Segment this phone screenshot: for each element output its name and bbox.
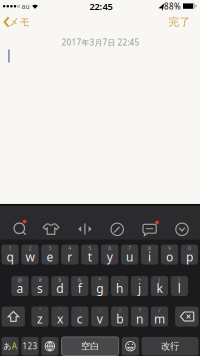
staticText: y	[107, 249, 113, 265]
button[interactable]: メモ	[0, 14, 30, 30]
button[interactable]	[4, 205, 36, 239]
staticText: m	[154, 311, 165, 327]
button[interactable]: 改行	[142, 337, 198, 355]
staticText: i	[148, 249, 151, 265]
button[interactable]: 1	[1, 244, 19, 264]
staticText: n	[136, 311, 143, 327]
button[interactable]: :	[71, 306, 88, 326]
staticText: 8	[148, 245, 151, 252]
button[interactable]: 8	[141, 244, 158, 264]
staticText: u	[126, 249, 133, 265]
staticText: 88%	[164, 1, 181, 12]
staticText: ?	[139, 307, 141, 314]
button[interactable]: 9	[161, 244, 178, 264]
staticText: 4	[68, 245, 71, 252]
button[interactable]: -	[111, 276, 128, 296]
button[interactable]	[35, 205, 67, 239]
staticText: 22:45	[89, 0, 112, 12]
button[interactable]: 完了	[166, 14, 192, 30]
staticText: *	[98, 276, 101, 283]
button[interactable]	[101, 205, 133, 239]
button[interactable]: #	[31, 276, 48, 296]
staticText: '	[59, 307, 60, 314]
staticText: x	[57, 311, 63, 327]
staticText: $	[58, 276, 61, 283]
button[interactable]: '	[51, 306, 68, 326]
staticText: r	[67, 249, 72, 265]
staticText: s	[37, 280, 43, 296]
button[interactable]: あ	[1, 337, 19, 355]
button[interactable]: !	[111, 306, 128, 326]
staticText: q	[7, 249, 14, 265]
staticText: 空白	[81, 340, 99, 352]
staticText: ;	[99, 307, 100, 314]
button[interactable]: 0	[181, 244, 198, 264]
staticText: 3	[48, 245, 51, 252]
staticText: 123	[22, 341, 37, 351]
staticText: 9	[168, 245, 171, 252]
staticText: 1	[9, 245, 12, 252]
button[interactable]: (	[151, 276, 168, 296]
button[interactable]	[166, 205, 198, 239]
staticText: z	[37, 311, 43, 327]
button[interactable]	[69, 205, 101, 239]
staticText: p	[186, 249, 193, 265]
button[interactable]: 4	[61, 244, 78, 264]
staticText: k	[156, 280, 162, 296]
staticText: 5	[88, 245, 91, 252]
staticText: 2017年3月7日 22:45	[61, 37, 139, 48]
staticText: g	[96, 280, 103, 296]
staticText: (	[158, 276, 160, 283]
button[interactable]: "	[31, 306, 49, 326]
button[interactable]	[175, 306, 198, 326]
staticText: :	[79, 307, 80, 314]
button[interactable]: 5	[81, 244, 98, 264]
button[interactable]: )	[171, 276, 188, 296]
staticText: c	[77, 311, 83, 327]
button[interactable]: &	[71, 276, 88, 296]
button[interactable]	[122, 337, 139, 355]
button[interactable]: /	[151, 306, 168, 326]
staticText: あ	[3, 341, 11, 351]
button[interactable]: +	[131, 276, 148, 296]
staticText: 0	[188, 245, 191, 252]
button[interactable]: 空白	[61, 337, 119, 355]
button[interactable]	[134, 205, 166, 239]
button[interactable]: 3	[41, 244, 58, 264]
staticText: l	[178, 280, 181, 296]
staticText: #	[38, 276, 41, 283]
staticText: 7	[128, 245, 131, 252]
staticText: t	[88, 249, 92, 265]
staticText: o	[166, 249, 173, 265]
staticText: f	[78, 280, 82, 296]
staticText: "	[39, 307, 41, 314]
staticText: 完了	[168, 15, 190, 28]
staticText: v	[97, 311, 103, 327]
staticText: 改行	[161, 340, 179, 352]
staticText: メモ	[8, 15, 30, 28]
button[interactable]: @	[11, 276, 29, 296]
button[interactable]: *	[91, 276, 108, 296]
button[interactable]: 7	[121, 244, 138, 264]
button[interactable]: 123	[21, 337, 39, 355]
staticText: d	[56, 280, 63, 296]
button[interactable]: ;	[91, 306, 108, 326]
staticText: !	[119, 307, 120, 314]
staticText: @	[17, 276, 22, 283]
button[interactable]: ?	[131, 306, 148, 326]
button[interactable]	[41, 337, 58, 355]
staticText: w	[25, 249, 34, 265]
staticText: a	[16, 280, 23, 296]
staticText: -	[119, 276, 121, 283]
staticText: 2	[28, 245, 31, 252]
button[interactable]	[1, 306, 25, 326]
staticText: e	[46, 249, 53, 265]
staticText: +	[138, 276, 141, 283]
staticText: &	[78, 276, 82, 283]
button[interactable]: 2	[21, 244, 39, 264]
staticText: 6	[108, 245, 111, 252]
button[interactable]: 6	[101, 244, 118, 264]
staticText: A	[12, 341, 17, 351]
button[interactable]: $	[51, 276, 68, 296]
staticText: h	[116, 280, 123, 296]
